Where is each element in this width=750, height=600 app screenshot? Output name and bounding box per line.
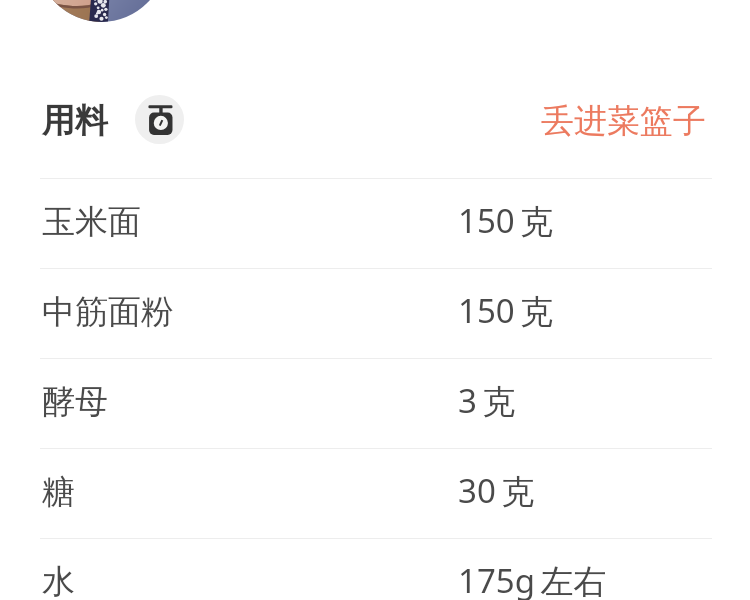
staticText: 150 克 <box>458 198 554 243</box>
staticText: 水 <box>42 561 75 600</box>
button[interactable]: Recipe author avatar <box>37 0 166 22</box>
button[interactable]: 玉米面 <box>0 179 750 268</box>
staticText: 丢进菜篮子 <box>541 100 706 137</box>
button[interactable]: 水 <box>0 539 750 600</box>
button[interactable]: Unit converter scale <box>135 95 184 144</box>
staticText: 酵母 <box>42 381 108 423</box>
staticText: 3 克 <box>458 378 516 423</box>
staticText: 175g 左右 <box>458 558 607 600</box>
staticText: 150 克 <box>458 288 554 333</box>
button[interactable]: 糖 <box>0 449 750 538</box>
staticText: 玉米面 <box>42 201 141 243</box>
button[interactable]: 酵母 <box>0 359 750 448</box>
staticText: 中筋面粉 <box>42 291 174 333</box>
staticText: 30 克 <box>458 468 535 513</box>
staticText: 用料 <box>42 100 108 142</box>
button[interactable]: 丢进菜篮子 <box>531 95 716 144</box>
button[interactable]: 中筋面粉 <box>0 269 750 358</box>
staticText: 糖 <box>42 471 75 513</box>
